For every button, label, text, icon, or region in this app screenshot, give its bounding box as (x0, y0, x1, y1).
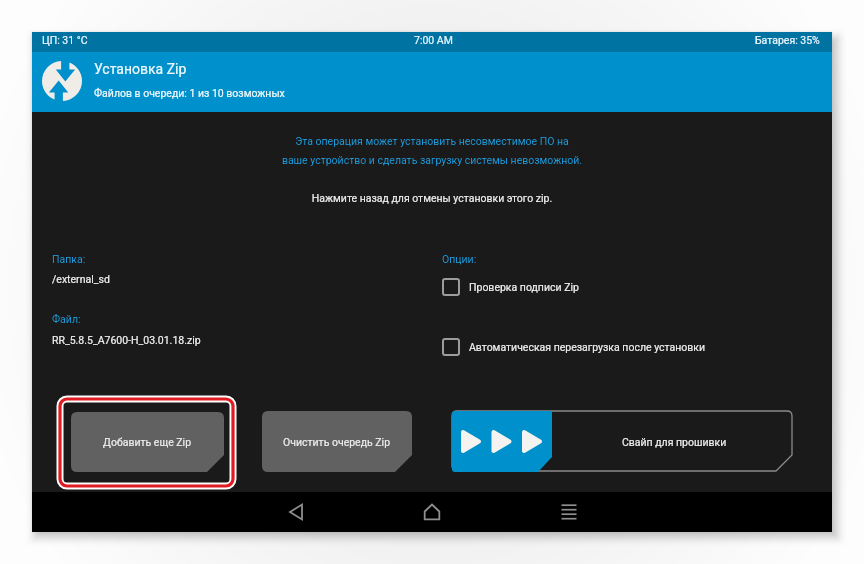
staticText: Файлов в очереди: 1 из 10 возможных (94, 87, 285, 99)
staticText: ЦП: 31 °C (42, 34, 88, 46)
button[interactable]: Автоматическая перезагрузка после устано… (442, 338, 705, 356)
staticText: Очистить очередь Zip (283, 436, 391, 448)
staticText: Папка: (52, 253, 86, 265)
staticText: RR_5.8.5_A7600-H_03.01.18.zip (52, 334, 201, 346)
button[interactable]: Home (408, 492, 456, 532)
staticText: Автоматическая перезагрузка после устано… (469, 341, 705, 353)
staticText: Добавить еще Zip (103, 436, 192, 448)
button[interactable]: Свайп для прошивки (452, 411, 792, 472)
button[interactable]: Recent apps (545, 492, 593, 532)
staticText: Батарея: 35% (755, 34, 820, 46)
other: TWRP (42, 61, 82, 101)
button[interactable]: Back (272, 492, 320, 532)
button[interactable]: Добавить еще Zip (71, 412, 224, 472)
staticText: /external_sd (52, 273, 110, 285)
staticText: Нажмите назад для отмены установки этого… (32, 192, 832, 204)
staticText: Файл: (52, 313, 81, 325)
staticText: Проверка подписи Zip (469, 281, 579, 293)
staticText: Установка Zip (94, 61, 187, 77)
button[interactable]: Очистить очередь Zip (262, 411, 412, 472)
staticText: Эта операция может установить несовмести… (32, 135, 832, 166)
button[interactable]: Проверка подписи Zip (442, 278, 579, 296)
staticText: Свайп для прошивки (622, 436, 727, 448)
staticText: Опции: (442, 253, 477, 265)
staticText: 7:00 AM (414, 34, 453, 46)
